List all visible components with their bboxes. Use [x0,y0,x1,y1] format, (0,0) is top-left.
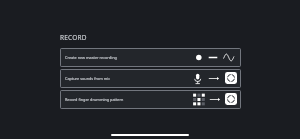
button[interactable]: Create new master recording [60,48,241,67]
staticText: Record finger drumming pattern [65,97,124,102]
staticText: RECORD [60,33,87,42]
button[interactable]: Capture sounds from mic [60,69,241,88]
staticText: Create new master recording [65,55,117,60]
staticText: Capture sounds from mic [65,76,111,81]
button[interactable]: Loop record [225,72,237,84]
button[interactable]: Record finger drumming pattern [60,90,241,109]
button[interactable]: Loop record [225,93,237,105]
